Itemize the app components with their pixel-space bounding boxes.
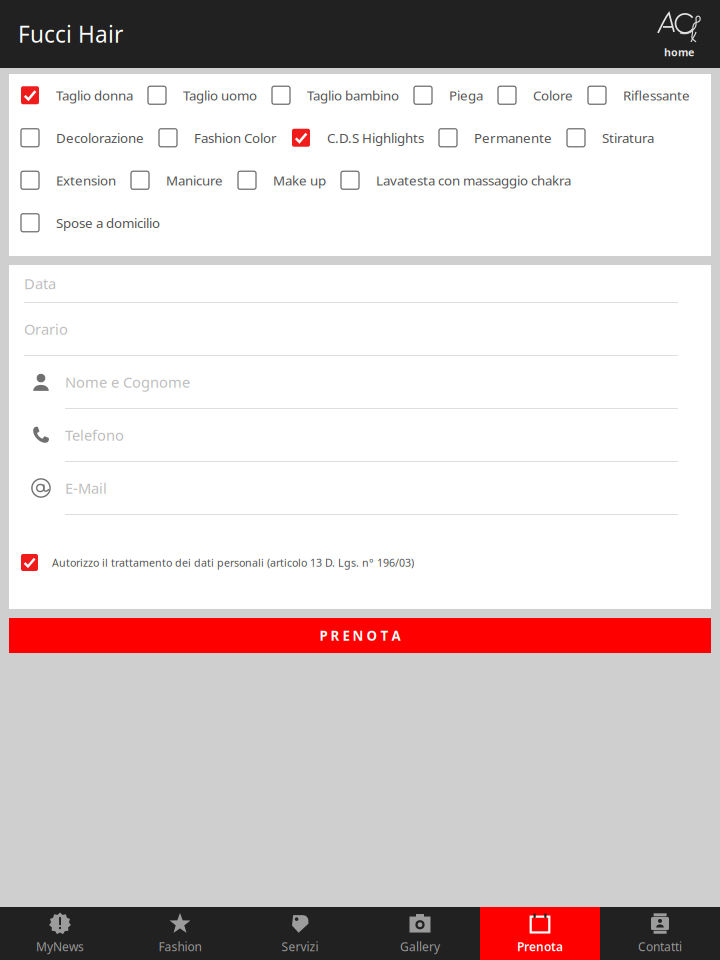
staticText: Gallery — [400, 938, 440, 954]
staticText: Taglio bambino — [307, 86, 399, 104]
staticText: P R E N O T A — [319, 627, 400, 644]
button[interactable]: Taglio bambino — [272, 86, 399, 104]
button[interactable]: Stiratura — [567, 129, 654, 147]
staticText: Stiratura — [602, 129, 654, 147]
staticText: Colore — [533, 86, 573, 104]
button[interactable]: Telefono — [9, 409, 711, 462]
button[interactable]: Colore — [498, 86, 573, 104]
staticText: Lavatesta con massaggio chakra — [376, 171, 571, 189]
staticText: Riflessante — [623, 86, 690, 104]
button[interactable]: Orario — [9, 303, 711, 356]
button[interactable]: Piega — [414, 86, 483, 104]
button[interactable]: MyNews — [0, 907, 120, 960]
button[interactable]: Decolorazione — [21, 129, 144, 147]
staticText: Fashion Color — [194, 129, 277, 147]
button[interactable]: Make up — [238, 171, 326, 189]
button[interactable]: Home — [654, 9, 720, 59]
staticText: Orario — [24, 319, 68, 339]
staticText: Prenota — [517, 938, 563, 954]
button[interactable]: E-Mail — [9, 462, 711, 515]
staticText: Autorizzo il trattamento dei dati person… — [52, 555, 414, 570]
button[interactable]: Nome e Cognome — [9, 356, 711, 409]
staticText: Manicure — [166, 171, 223, 189]
staticText: Fucci Hair — [18, 19, 123, 49]
staticText: Taglio uomo — [183, 86, 257, 104]
button[interactable]: Data — [9, 265, 711, 303]
button[interactable]: C.D.S Highlights — [292, 129, 424, 147]
staticText: Taglio donna — [56, 86, 133, 104]
button[interactable]: Fashion Color — [159, 129, 277, 147]
staticText: Nome e Cognome — [65, 372, 190, 392]
button[interactable]: Riflessante — [588, 86, 690, 104]
staticText: Spose a domicilio — [56, 214, 160, 232]
button[interactable]: Taglio donna — [21, 86, 133, 104]
button[interactable]: Extension — [21, 171, 116, 189]
button[interactable]: Gallery — [360, 907, 480, 960]
button[interactable]: Prenota — [480, 907, 600, 960]
staticText: MyNews — [36, 938, 84, 954]
staticText: Decolorazione — [56, 129, 144, 147]
staticText: C.D.S Highlights — [327, 129, 424, 147]
staticText: Extension — [56, 171, 116, 189]
staticText: Telefono — [65, 425, 124, 445]
staticText: E-Mail — [65, 478, 107, 498]
button[interactable]: Lavatesta con massaggio chakra — [341, 171, 571, 189]
button[interactable]: P R E N O T A — [9, 618, 711, 653]
button[interactable]: Permanente — [439, 129, 552, 147]
button[interactable]: Manicure — [131, 171, 223, 189]
staticText: Servizi — [281, 938, 318, 954]
button[interactable]: Taglio uomo — [148, 86, 257, 104]
button[interactable]: Contatti — [600, 907, 720, 960]
staticText: home — [664, 45, 694, 59]
staticText: Data — [24, 274, 56, 293]
staticText: Fashion — [158, 938, 201, 954]
button[interactable]: Spose a domicilio — [21, 214, 160, 232]
button[interactable]: Autorizzo il trattamento dei dati person… — [9, 515, 711, 586]
button[interactable]: Fashion — [120, 907, 240, 960]
button[interactable]: Servizi — [240, 907, 360, 960]
staticText: Contatti — [638, 938, 682, 954]
staticText: Permanente — [474, 129, 552, 147]
staticText: Make up — [273, 171, 326, 189]
staticText: Piega — [449, 86, 483, 104]
